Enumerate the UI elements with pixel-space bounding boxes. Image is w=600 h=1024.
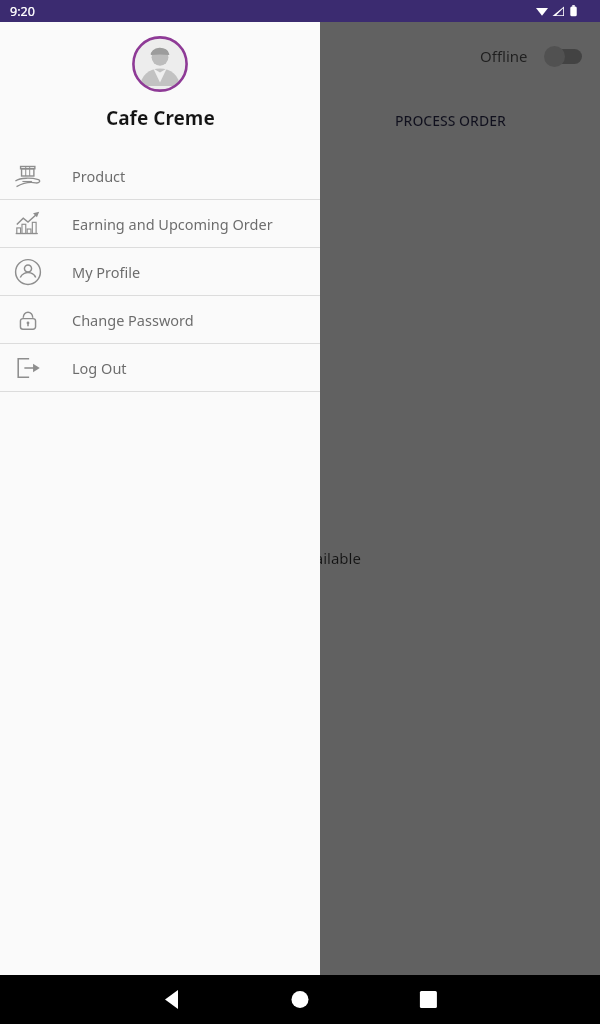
staticText: Earning and Upcoming Order [72, 214, 273, 234]
staticText: NEW ORDER [109, 111, 192, 130]
staticText: My Profile [72, 262, 141, 282]
staticText: PROCESS ORDER [395, 111, 506, 130]
button[interactable]: Change Password [0, 296, 320, 343]
button[interactable]: PROCESS ORDER [300, 96, 600, 144]
button[interactable]: NEW ORDER [0, 96, 300, 144]
staticText: Offline [480, 46, 528, 66]
button[interactable]: Earning and Upcoming Order [0, 200, 320, 247]
staticText: Product [72, 166, 126, 186]
staticText: Cafe Creme [106, 105, 215, 131]
staticText: 9:20 [10, 3, 35, 20]
staticText: No data available [239, 548, 361, 568]
staticText: Change Password [72, 310, 194, 330]
button[interactable]: Log Out [0, 344, 320, 391]
button[interactable]: Offline toggle [544, 45, 584, 67]
button[interactable]: Product [0, 152, 320, 199]
button[interactable]: My Profile [0, 248, 320, 295]
staticText: Log Out [72, 358, 127, 378]
